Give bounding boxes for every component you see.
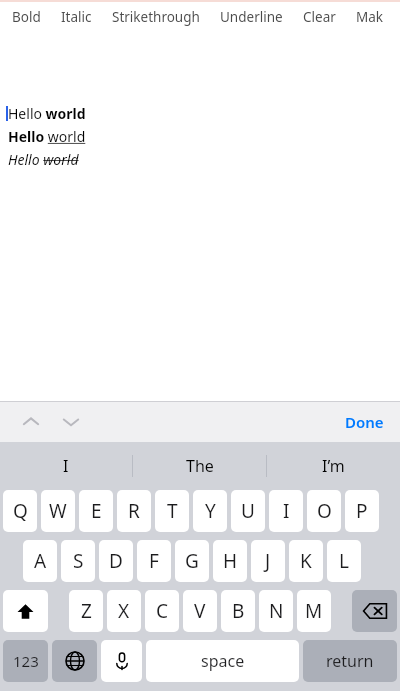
- staticText: 123: [13, 651, 39, 671]
- staticText: W: [49, 498, 67, 524]
- staticText: H: [223, 548, 238, 574]
- button[interactable]: Make L: [346, 2, 400, 32]
- button[interactable]: Backspace: [352, 590, 397, 632]
- button[interactable]: Y: [193, 490, 227, 532]
- staticText: M: [305, 598, 323, 624]
- button[interactable]: Shift: [3, 590, 48, 632]
- staticText: I: [63, 455, 69, 477]
- button[interactable]: D: [99, 540, 133, 582]
- staticText: Make L: [356, 8, 390, 26]
- button[interactable]: Italic: [51, 2, 102, 32]
- button[interactable]: Clear: [293, 2, 346, 32]
- button[interactable]: Strikethrough: [102, 2, 210, 32]
- staticText: J: [265, 548, 271, 574]
- staticText: Hello world: [8, 150, 79, 169]
- staticText: Underline: [220, 8, 283, 26]
- staticText: S: [73, 548, 84, 574]
- button[interactable]: G: [175, 540, 209, 582]
- button[interactable]: H: [213, 540, 247, 582]
- staticText: T: [167, 498, 178, 524]
- button[interactable]: Z: [69, 590, 103, 632]
- staticText: N: [269, 598, 284, 624]
- button[interactable]: X: [107, 590, 141, 632]
- staticText: Z: [81, 598, 92, 624]
- button[interactable]: L: [327, 540, 361, 582]
- staticText: B: [232, 598, 245, 624]
- staticText: E: [91, 498, 102, 524]
- button[interactable]: C: [145, 590, 179, 632]
- button[interactable]: F: [137, 540, 171, 582]
- staticText: Italic: [61, 8, 92, 26]
- button[interactable]: return: [303, 640, 397, 682]
- staticText: Q: [13, 498, 28, 524]
- staticText: Hello world: [8, 127, 86, 146]
- button[interactable]: E: [79, 490, 113, 532]
- button[interactable]: I’m: [267, 442, 400, 490]
- button[interactable]: T: [155, 490, 189, 532]
- staticText: K: [300, 548, 312, 574]
- button[interactable]: I: [269, 490, 303, 532]
- staticText: I: [283, 498, 290, 524]
- staticText: Bold: [12, 8, 41, 26]
- button[interactable]: B: [221, 590, 255, 632]
- staticText: I’m: [322, 455, 345, 477]
- button[interactable]: A: [23, 540, 57, 582]
- button[interactable]: I: [0, 442, 132, 490]
- button[interactable]: Done: [329, 404, 400, 440]
- staticText: Done: [345, 412, 384, 432]
- staticText: F: [149, 548, 159, 574]
- staticText: Hello world: [8, 104, 86, 123]
- button[interactable]: R: [117, 490, 151, 532]
- button[interactable]: Next field: [54, 405, 88, 439]
- button[interactable]: Q: [3, 490, 37, 532]
- staticText: A: [34, 548, 47, 574]
- staticText: X: [118, 598, 130, 624]
- staticText: The: [186, 455, 214, 477]
- staticText: R: [128, 498, 140, 524]
- button[interactable]: Underline: [210, 2, 293, 32]
- staticText: C: [156, 598, 169, 624]
- staticText: G: [185, 548, 199, 574]
- button[interactable]: space: [146, 640, 299, 682]
- button[interactable]: W: [41, 490, 75, 532]
- button[interactable]: Previous field: [14, 405, 48, 439]
- button[interactable]: J: [251, 540, 285, 582]
- button[interactable]: M: [297, 590, 331, 632]
- staticText: O: [317, 498, 332, 524]
- staticText: return: [326, 650, 374, 672]
- button[interactable]: V: [183, 590, 217, 632]
- staticText: L: [339, 548, 349, 574]
- staticText: Clear: [303, 8, 336, 26]
- staticText: U: [241, 498, 255, 524]
- staticText: Strikethrough: [112, 8, 200, 26]
- staticText: Y: [205, 498, 216, 524]
- button[interactable]: U: [231, 490, 265, 532]
- button[interactable]: N: [259, 590, 293, 632]
- staticText: space: [201, 650, 245, 672]
- button[interactable]: O: [307, 490, 341, 532]
- button[interactable]: 123: [3, 640, 48, 682]
- staticText: P: [356, 498, 368, 524]
- button[interactable]: The: [133, 442, 266, 490]
- button[interactable]: S: [61, 540, 95, 582]
- button[interactable]: Dictate: [101, 640, 142, 682]
- button[interactable]: Bold: [2, 2, 51, 32]
- staticText: D: [109, 548, 123, 574]
- button[interactable]: P: [345, 490, 379, 532]
- button[interactable]: K: [289, 540, 323, 582]
- button[interactable]: Switch keyboard: [52, 640, 97, 682]
- staticText: V: [194, 598, 206, 624]
